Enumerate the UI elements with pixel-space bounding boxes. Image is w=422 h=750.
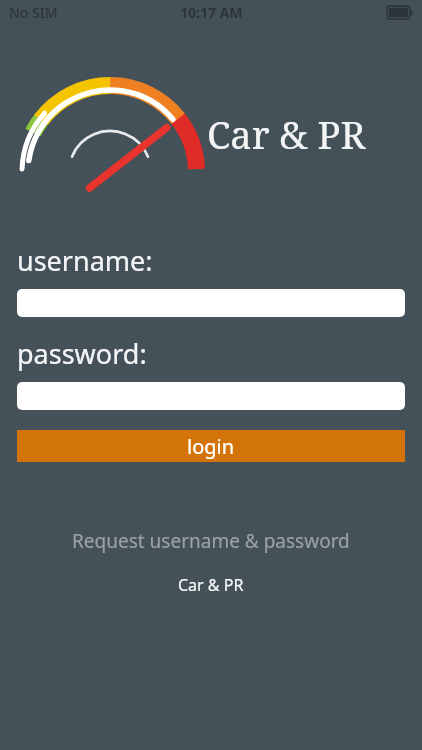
button[interactable]: Text input — [17, 382, 405, 410]
staticText: 10:17 AM — [180, 3, 243, 22]
staticText: Car & PR — [207, 108, 366, 160]
button[interactable]: Request username & password — [0, 524, 422, 558]
staticText: No SIM — [9, 3, 58, 22]
staticText: Request username & password — [72, 528, 350, 554]
button[interactable]: Text input — [17, 289, 405, 317]
staticText: password: — [17, 335, 147, 372]
button[interactable]: login — [17, 430, 405, 462]
staticText: username: — [17, 242, 153, 279]
staticText: login — [187, 433, 235, 460]
staticText: Car & PR — [178, 574, 244, 596]
